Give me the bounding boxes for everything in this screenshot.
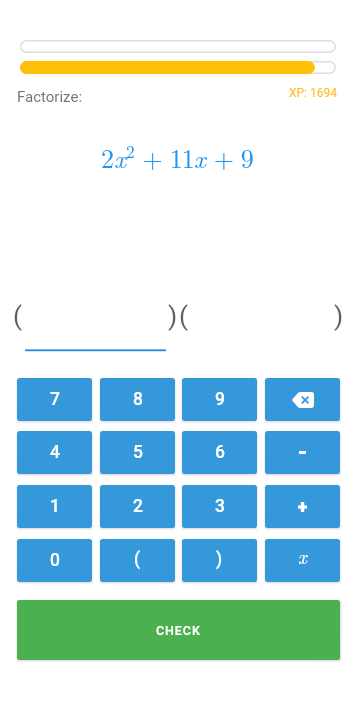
button[interactable]: 9 xyxy=(182,378,257,421)
staticText: x xyxy=(298,543,307,570)
staticText: ( xyxy=(134,549,141,570)
staticText: 7 xyxy=(50,389,60,410)
staticText: 5 xyxy=(133,442,143,463)
staticText: 8 xyxy=(133,389,143,410)
button[interactable]: Backspace xyxy=(265,378,340,421)
button[interactable]: 3 xyxy=(182,485,257,528)
staticText: ) xyxy=(168,300,178,331)
staticText: Factorize: xyxy=(17,88,83,106)
staticText: CHECK xyxy=(156,623,201,638)
staticText: XP: 1694 xyxy=(289,86,337,100)
button[interactable]: 1 xyxy=(17,485,92,528)
staticText: ) xyxy=(334,300,344,331)
button[interactable]: ( xyxy=(100,539,175,582)
staticText: 9 xyxy=(215,389,225,410)
button[interactable]: 8 xyxy=(100,378,175,421)
staticText: ( xyxy=(13,300,23,331)
staticText: 6 xyxy=(215,442,225,463)
staticText: 2x2 + 11x + 9 xyxy=(101,138,253,175)
button[interactable]: 0 xyxy=(17,539,92,582)
button[interactable]: 7 xyxy=(17,378,92,421)
button[interactable]: CHECK xyxy=(17,600,340,660)
button[interactable]: x xyxy=(265,539,340,582)
staticText: ( xyxy=(179,300,189,331)
button[interactable]: 4 xyxy=(17,431,92,474)
staticText: 3 xyxy=(215,496,225,517)
button[interactable]: Minus xyxy=(265,431,340,474)
button[interactable]: Plus xyxy=(265,485,340,528)
staticText: 4 xyxy=(50,442,60,463)
button[interactable]: 6 xyxy=(182,431,257,474)
staticText: ) xyxy=(216,549,223,570)
button[interactable]: 5 xyxy=(100,431,175,474)
button[interactable]: 2 xyxy=(100,485,175,528)
staticText: 0 xyxy=(50,550,60,571)
staticText: 1 xyxy=(50,496,60,517)
button[interactable]: ) xyxy=(182,539,257,582)
staticText: 2 xyxy=(133,496,143,517)
